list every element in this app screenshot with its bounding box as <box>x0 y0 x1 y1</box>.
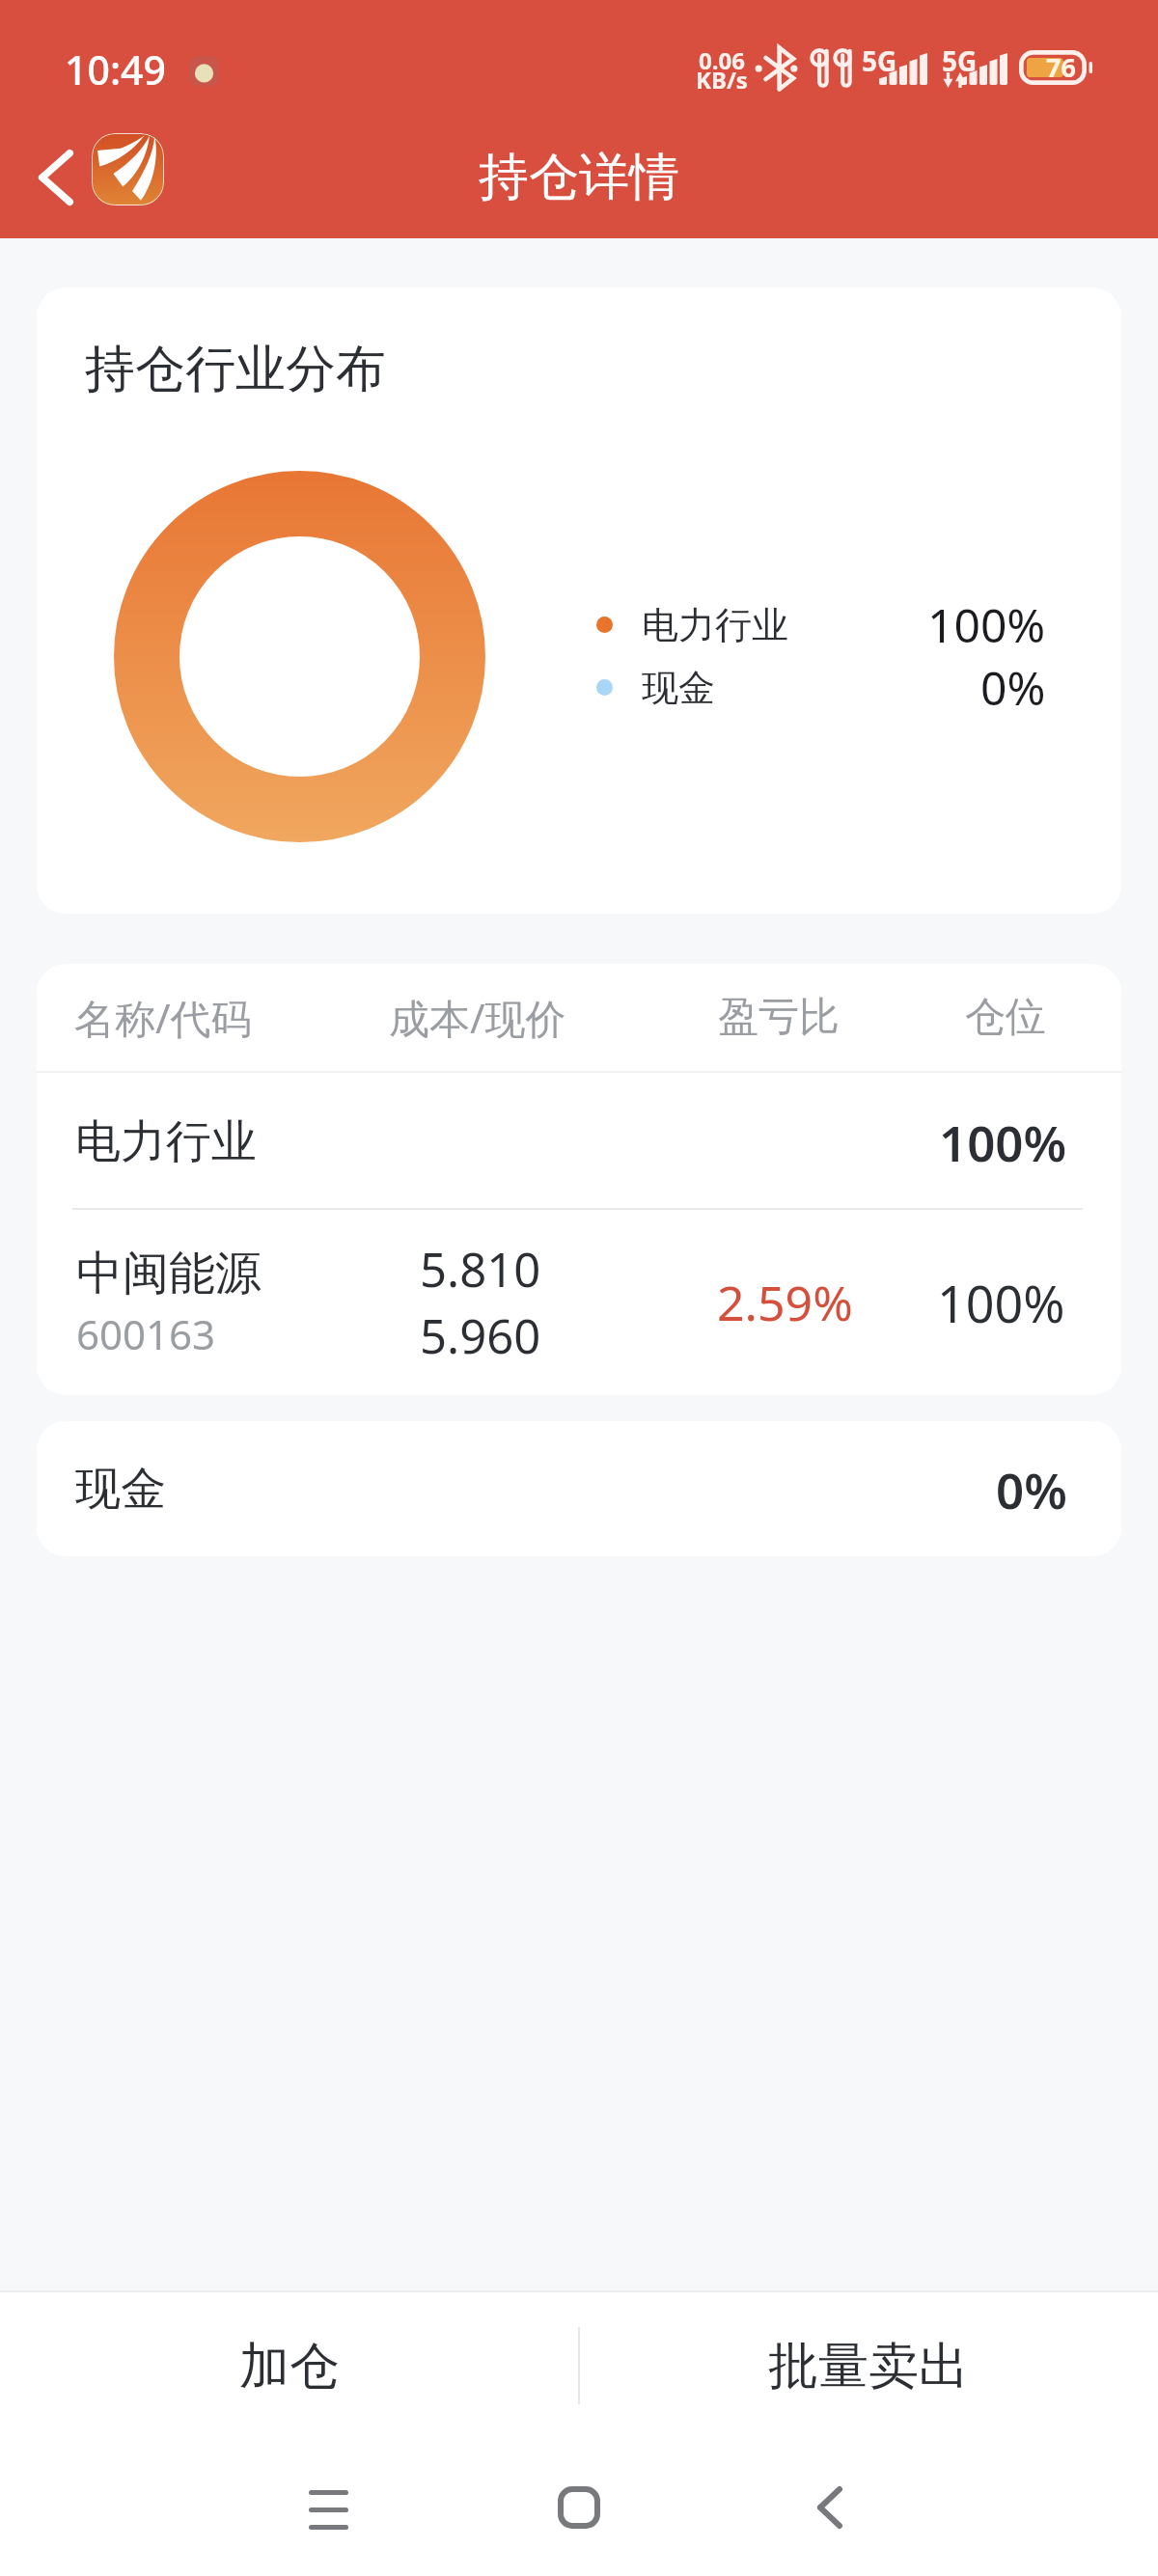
staticText: 电力行业 <box>642 602 788 648</box>
staticText: 持仓行业分布 <box>85 338 386 401</box>
staticText: 5.810 <box>420 1237 541 1302</box>
staticText: 加仓 <box>239 2335 340 2398</box>
button[interactable]: Back <box>772 2441 888 2557</box>
staticText: 批量卖出 <box>768 2335 969 2398</box>
staticText: 2.59% <box>717 1270 853 1335</box>
staticText: 100% <box>939 1109 1067 1175</box>
staticText: 5.960 <box>420 1303 541 1368</box>
staticText: 持仓详情 <box>479 146 679 209</box>
staticText: KB/s <box>696 64 748 96</box>
button[interactable]: 中闽能源 <box>37 1210 1121 1395</box>
staticText: 0.06 <box>699 44 745 76</box>
staticText: 5G <box>942 42 978 79</box>
staticText: 0% <box>996 1456 1067 1522</box>
staticText: 5G <box>862 42 897 79</box>
staticText: 100% <box>927 593 1046 656</box>
button[interactable]: Home <box>521 2441 637 2557</box>
staticText: 10:49 <box>65 42 166 96</box>
staticText: 中闽能源 <box>76 1245 262 1302</box>
staticText: 名称/代码 <box>74 990 252 1045</box>
staticText: 仓位 <box>965 992 1046 1043</box>
staticText: 76 <box>1046 49 1076 84</box>
staticText: 现金 <box>642 665 715 711</box>
staticText: 电力行业 <box>75 1113 257 1170</box>
button[interactable]: 批量卖出 <box>579 2290 1158 2441</box>
button[interactable]: 现金 <box>37 1421 1121 1556</box>
staticText: 现金 <box>75 1461 166 1518</box>
staticText: 100% <box>937 1269 1065 1337</box>
button[interactable]: App logo <box>92 133 164 206</box>
staticText: 成本/现价 <box>389 990 566 1045</box>
button[interactable]: Recent apps <box>270 2441 386 2557</box>
button[interactable]: 加仓 <box>0 2290 579 2441</box>
staticText: 600163 <box>76 1306 216 1361</box>
button[interactable]: 电力行业 <box>37 1073 1121 1210</box>
button[interactable]: Back <box>10 131 102 224</box>
staticText: 0% <box>980 656 1046 719</box>
staticText: 盈亏比 <box>718 992 840 1043</box>
